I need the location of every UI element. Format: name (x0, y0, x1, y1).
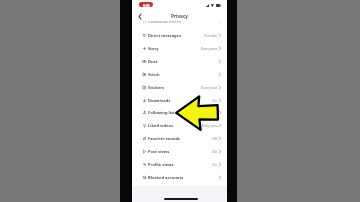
staticText: Downloads (148, 98, 171, 104)
staticText: Blocked accounts (148, 175, 184, 181)
staticText: Profile views (148, 162, 174, 168)
staticText: Stitch (148, 72, 160, 78)
staticText: Story (148, 46, 159, 52)
staticText: Liked videos (148, 123, 174, 129)
staticText: Everyone (201, 85, 218, 90)
button[interactable]: Following list (132, 106, 227, 119)
button[interactable]: Post views (132, 145, 227, 158)
staticText: Comment filters (148, 19, 181, 25)
button[interactable]: Story (132, 42, 227, 55)
staticText: Post views (148, 149, 170, 155)
staticText: Direct messages (148, 33, 182, 39)
button[interactable]: Direct messages (132, 29, 227, 42)
staticText: Favorite sounds (148, 136, 181, 142)
button[interactable]: Comment filters (132, 15, 227, 28)
button[interactable]: Profile views (132, 158, 227, 171)
staticText: Friends (204, 33, 218, 38)
staticText: Everyone (201, 46, 218, 51)
staticText: Privacy (171, 13, 188, 19)
button[interactable]: Blocked accounts (132, 171, 227, 184)
staticText: On (212, 162, 218, 167)
button[interactable]: Liked videos (132, 119, 227, 132)
button[interactable]: Downloads (132, 94, 227, 107)
staticText: Following list (148, 110, 175, 116)
staticText: On (212, 149, 218, 154)
button[interactable]: Favorite sounds (132, 132, 227, 145)
staticText: 8:36 (143, 3, 150, 7)
staticText: Off (212, 136, 218, 141)
staticText: On (212, 98, 218, 103)
button[interactable]: Back (135, 12, 144, 21)
staticText: Stickers (148, 85, 165, 91)
staticText: Only you (202, 123, 218, 128)
staticText: Duet (148, 59, 158, 65)
button[interactable]: Stickers (132, 81, 227, 94)
button[interactable]: Stitch (132, 68, 227, 81)
button[interactable]: Duet (132, 55, 227, 68)
